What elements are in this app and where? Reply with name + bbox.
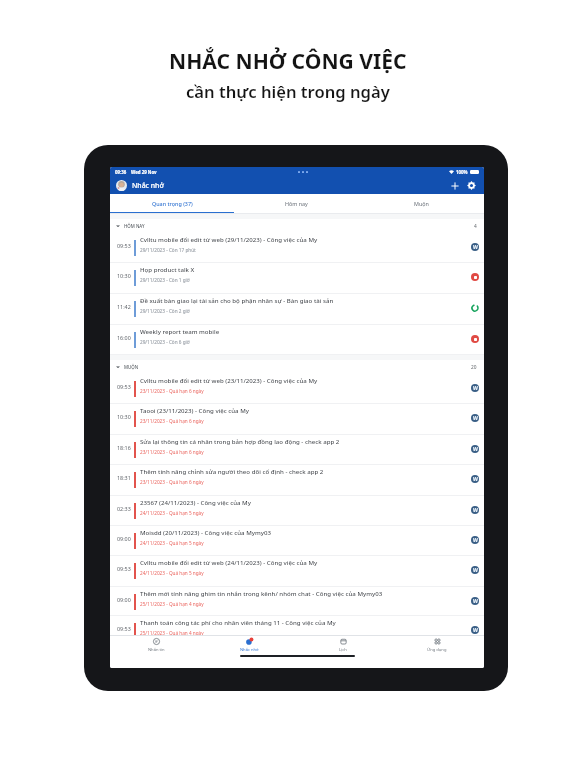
staticText: 02:33	[117, 505, 131, 512]
button[interactable]: 09:53	[110, 616, 484, 645]
staticText: Ứng dụng	[427, 647, 447, 652]
staticText: 20	[471, 364, 477, 371]
staticText: 23567 (24/11/2023) - Công việc của My	[140, 498, 251, 506]
staticText: W	[473, 476, 478, 483]
button[interactable]: 02:33	[110, 496, 484, 525]
staticText: 25/11/2023 - Quá hạn 4 ngày	[140, 601, 204, 607]
staticText: Cvlltu mobile đổi edit từ web (24/11/202…	[140, 558, 318, 566]
staticText: 10:30	[117, 413, 131, 420]
button[interactable]: 09:53	[110, 233, 484, 262]
button[interactable]: Settings	[465, 179, 478, 192]
button[interactable]: 09:00	[110, 526, 484, 555]
staticText: 24/11/2023 - Quá hạn 5 ngày	[140, 570, 204, 576]
staticText: 09:53	[117, 625, 131, 632]
button[interactable]: 18:16	[110, 435, 484, 464]
button[interactable]: Muộn	[359, 194, 484, 213]
staticText: 23/11/2023 - Quá hạn 6 ngày	[140, 449, 204, 455]
staticText: Muộn	[414, 200, 429, 207]
staticText: 23/11/2023 - Quá hạn 6 ngày	[140, 479, 204, 485]
staticText: Nhắc nhở	[240, 647, 259, 652]
button[interactable]: 10:30	[110, 404, 484, 434]
staticText: W	[473, 598, 478, 605]
staticText: 29/11/2023 - Còn 17 phút	[140, 247, 196, 253]
staticText: Weekly report team mobile	[140, 327, 220, 335]
staticText: Sửa lại thông tin cá nhân trong bản hợp …	[140, 437, 340, 445]
staticText: W	[473, 567, 478, 574]
button[interactable]: 18:31	[110, 465, 484, 495]
staticText: 23/11/2023 - Quá hạn 6 ngày	[140, 388, 204, 394]
staticText: W	[473, 385, 478, 392]
staticText: 29/11/2023 - Còn 6 giờ	[140, 339, 190, 345]
staticText: W	[473, 415, 478, 422]
button[interactable]: 09:53	[110, 374, 484, 403]
button[interactable]: 16:00	[110, 325, 484, 354]
staticText: NHẮC NHỞ CÔNG VIỆC	[169, 46, 407, 75]
staticText: 09:53	[117, 565, 131, 572]
staticText: W	[473, 537, 478, 544]
button[interactable]: Ứng dụng	[390, 636, 484, 652]
staticText: 16:00	[117, 334, 131, 341]
staticText: 29/11/2023 - Còn 1 giờ	[140, 277, 190, 283]
staticText: 18:16	[117, 444, 131, 451]
staticText: Thêm mới tính năng ghim tin nhắn trong k…	[140, 589, 383, 597]
staticText: Nhắn tin	[148, 647, 165, 652]
staticText: Moisdd (20/11/2023) - Công việc của Mymy…	[140, 528, 271, 536]
staticText: 23/11/2023 - Quá hạn 6 ngày	[140, 418, 204, 424]
button[interactable]: Add reminder	[448, 179, 461, 192]
staticText: MUỘN	[124, 364, 139, 370]
staticText: Hôm nay	[285, 200, 308, 207]
staticText: Cvlltu mobile đổi edit từ web (29/11/202…	[140, 235, 318, 243]
button[interactable]: Nhắc nhở	[203, 636, 296, 652]
button[interactable]: 11:42	[110, 294, 484, 324]
staticText: Nhắc nhở	[132, 181, 164, 190]
staticText: 09:00	[117, 535, 131, 542]
button[interactable]: Nhắn tin	[110, 636, 203, 652]
staticText: 09:53	[117, 242, 131, 249]
staticText: 24/11/2023 - Quá hạn 5 ngày	[140, 540, 204, 546]
staticText: 25/11/2023 - Quá hạn 4 ngày	[140, 630, 204, 636]
button[interactable]: Lịch	[296, 636, 390, 652]
staticText: W	[473, 446, 478, 453]
staticText: 4	[474, 223, 477, 230]
staticText: 09:36	[115, 169, 127, 175]
staticText: 10:30	[117, 272, 131, 279]
staticText: Họp product talk X	[140, 265, 195, 273]
staticText: 09:53	[117, 383, 131, 390]
staticText: W	[473, 244, 478, 251]
staticText: Wed 29 Nov	[131, 169, 157, 175]
staticText: Thanh toán công tác phí cho nhân viên th…	[140, 618, 336, 626]
staticText: 18:31	[117, 474, 131, 481]
button[interactable]: 09:53	[110, 556, 484, 586]
staticText: W	[473, 507, 478, 514]
staticText: Thêm tính năng chỉnh sửa người theo dõi …	[140, 467, 324, 475]
staticText: 29/11/2023 - Còn 2 giờ	[140, 308, 190, 314]
button[interactable]: Quan trọng (37)	[110, 194, 234, 213]
staticText: Đề xuất bàn giao lại tài sản cho bộ phận…	[140, 296, 334, 304]
staticText: HÔM NAY	[124, 223, 145, 229]
staticText: Quan trọng (37)	[152, 200, 193, 207]
button[interactable]: Hôm nay	[234, 194, 359, 213]
staticText: cần thực hiện trong ngày	[186, 80, 390, 103]
staticText: 11:42	[117, 303, 131, 310]
button[interactable]: 09:00	[110, 587, 484, 615]
staticText: 100%	[456, 169, 468, 175]
staticText: 09:00	[117, 596, 131, 603]
staticText: 24/11/2023 - Quá hạn 5 ngày	[140, 510, 204, 516]
button[interactable]: 10:30	[110, 263, 484, 293]
staticText: Taooi (23/11/2023) - Công việc của My	[140, 406, 250, 414]
staticText: Cvlltu mobile đổi edit từ web (23/11/202…	[140, 376, 318, 384]
staticText: W	[473, 627, 478, 634]
staticText: Lịch	[339, 647, 347, 652]
